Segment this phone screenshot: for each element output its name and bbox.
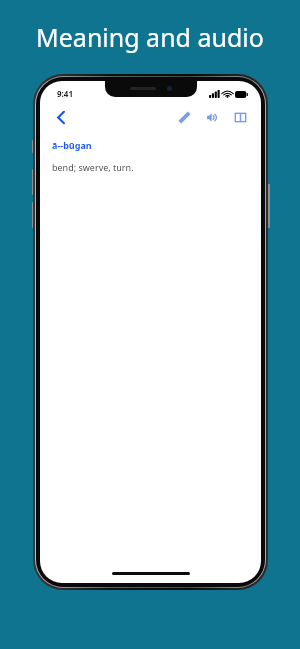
button[interactable]: Back bbox=[50, 106, 72, 128]
staticText: 9:41 bbox=[57, 88, 73, 99]
button[interactable]: Play audio bbox=[201, 106, 223, 128]
staticText: ā--būgan bbox=[52, 139, 92, 151]
button[interactable]: Edit bbox=[173, 106, 195, 128]
staticText: bend; swerve, turn. bbox=[52, 161, 134, 173]
staticText: Meaning and audio bbox=[36, 20, 264, 54]
button[interactable]: Dictionary bbox=[229, 106, 251, 128]
